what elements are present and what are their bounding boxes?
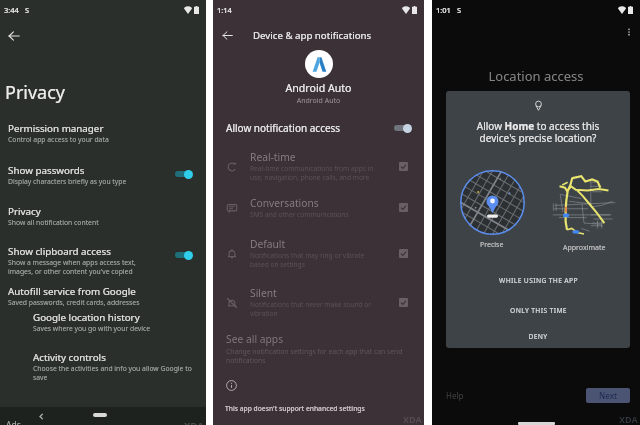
staticText: Notifications that may ring or vibrate b… [250,251,365,269]
staticText: 1:01 [436,5,451,15]
button[interactable]: Silent [213,286,424,318]
button[interactable]: Show passwords [0,164,206,186]
staticText: Autofill service from Google [8,285,136,298]
staticText: Display characters briefly as you type [8,177,127,186]
staticText: Control app access to your data [8,135,109,144]
staticText: Real-time communications from apps in us… [250,164,374,182]
staticText: Ads [6,419,21,425]
button[interactable]: ONLY THIS TIME [446,295,630,325]
staticText: Default [250,237,286,251]
staticText: Approximate [563,243,606,253]
button[interactable]: Privacy [0,205,206,227]
staticText: Android Auto [213,96,424,106]
staticText: Permission manager [8,122,104,135]
staticText: Notifications that never make sound or v… [250,300,371,318]
staticText: Google location history [33,311,140,324]
staticText: Change notification settings for each ap… [226,347,403,365]
button[interactable]: Allow notification access [213,121,424,135]
staticText: Privacy [5,80,66,105]
button[interactable]: Autofill service from Google [0,285,206,307]
staticText: Activity controls [33,351,106,364]
button[interactable]: Show clipboard access [0,245,206,276]
staticText: ONLY THIS TIME [510,306,567,315]
staticText: Device & app notifications [253,29,372,42]
staticText: Android Auto [213,81,424,95]
button[interactable]: Back [2,24,26,48]
staticText: Real-time [250,150,296,164]
button[interactable]: Permission manager [0,122,206,144]
staticText: WHILE USING THE APP [499,276,578,285]
staticText: S [25,5,30,15]
staticText: XDA [403,413,422,425]
button[interactable]: More options [621,24,637,40]
button[interactable]: Google location history [0,311,206,333]
staticText: Location access [432,67,640,85]
button[interactable]: See all apps [213,332,424,365]
button[interactable]: DENY [446,325,630,348]
staticText: Next [599,390,618,401]
staticText: DENY [528,332,548,341]
button[interactable]: Next [586,388,630,403]
staticText: S [457,5,462,15]
button[interactable]: WHILE USING THE APP [446,265,630,295]
button[interactable]: Back [36,411,46,421]
button[interactable]: Back [217,25,237,45]
button[interactable]: Activity controls [0,351,206,382]
staticText: Precise [480,240,504,250]
staticText: Choose the activities and info you allow… [33,364,192,382]
button[interactable]: Real-time [213,150,424,182]
staticText: Show passwords [8,164,85,177]
staticText: XDA [184,419,204,425]
button[interactable]: Default [213,237,424,269]
staticText: Allow Home to access this device's preci… [458,119,618,145]
staticText: Privacy [8,205,41,218]
staticText: 1:14 [217,5,232,15]
staticText: 3:44 [4,5,19,15]
staticText: This app doesn't support enhanced settin… [225,404,365,413]
button[interactable]: Help [446,390,464,401]
staticText: Allow notification access [226,121,394,135]
staticText: Saved passwords, credit cards, addresses [8,298,140,307]
staticText: XDA [619,413,638,425]
staticText: Conversations [250,196,319,210]
staticText: Silent [250,286,277,300]
staticText: Show clipboard access [8,245,111,258]
staticText: SMS and other communications [250,210,349,219]
button[interactable]: Conversations [213,196,424,219]
staticText: Show all notification content [8,218,99,227]
staticText: See all apps [226,332,284,346]
staticText: Show a message when apps access text, im… [8,258,136,276]
staticText: Saves where you go with your device [33,324,151,333]
